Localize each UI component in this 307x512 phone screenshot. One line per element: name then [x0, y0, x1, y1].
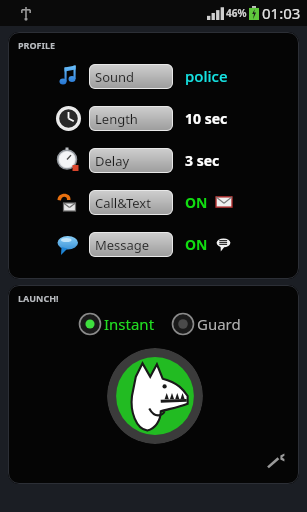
button[interactable]: Guard [169, 310, 243, 338]
button[interactable]: Launch alarm [107, 348, 203, 444]
button[interactable]: Message [89, 232, 173, 257]
staticText: Length [95, 110, 138, 128]
button[interactable]: Instant [76, 310, 157, 338]
staticText: Delay [95, 152, 130, 170]
staticText: police [185, 66, 228, 86]
staticText: ON [185, 193, 208, 212]
button[interactable]: Length [89, 106, 173, 131]
staticText: Sound [95, 68, 135, 86]
staticText: Guard [197, 314, 241, 334]
staticText: 46% [226, 6, 247, 20]
staticText: LAUNCH! [18, 292, 59, 304]
button[interactable]: Settings [261, 446, 291, 476]
button[interactable]: Sound [89, 64, 173, 89]
staticText: Message [95, 236, 150, 254]
staticText: 3 sec [185, 151, 220, 170]
button[interactable]: Call&Text [89, 190, 173, 215]
staticText: PROFILE [18, 39, 56, 51]
staticText: 01:03 [262, 3, 301, 23]
staticText: Call&Text [95, 194, 151, 212]
staticText: ON [185, 235, 208, 254]
staticText: Instant [104, 314, 155, 334]
button[interactable]: Delay [89, 148, 173, 173]
staticText: 10 sec [185, 109, 228, 128]
